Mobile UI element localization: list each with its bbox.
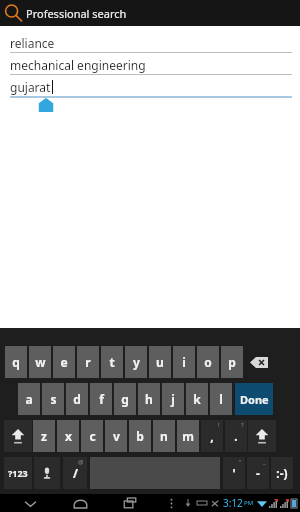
- staticText: i: [182, 354, 186, 370]
- staticText: h: [145, 391, 153, 407]
- staticText: gujarat: [10, 79, 51, 95]
- staticText: o: [204, 354, 212, 370]
- button[interactable]: v: [105, 420, 127, 452]
- staticText: g: [121, 391, 129, 407]
- staticText: z: [41, 428, 47, 444]
- button[interactable]: o: [197, 346, 219, 378]
- staticText: @: [78, 458, 84, 466]
- staticText: Professional search: [26, 6, 127, 21]
- button[interactable]: g: [114, 383, 136, 415]
- button[interactable]: j: [162, 383, 184, 415]
- button[interactable]: Home: [62, 494, 98, 512]
- staticText: y: [133, 354, 140, 370]
- staticText: n: [160, 428, 168, 444]
- staticText: k: [193, 391, 201, 407]
- button[interactable]: ": [223, 457, 245, 489]
- staticText: mechanical engineering: [10, 57, 146, 73]
- staticText: s: [50, 391, 57, 407]
- button[interactable]: !: [201, 420, 223, 452]
- button[interactable]: gujarat: [10, 77, 292, 112]
- button[interactable]: h: [138, 383, 160, 415]
- button[interactable]: e: [53, 346, 75, 378]
- staticText: u: [156, 354, 164, 370]
- staticText: 3:12: [223, 496, 243, 510]
- button[interactable]: k: [186, 383, 208, 415]
- button[interactable]: r: [77, 346, 99, 378]
- button[interactable]: @: [63, 457, 87, 489]
- staticText: j: [171, 391, 175, 407]
- button[interactable]: p: [221, 346, 243, 378]
- button[interactable]: l: [210, 383, 232, 415]
- staticText: x: [65, 428, 72, 444]
- button[interactable]: w: [29, 346, 51, 378]
- button[interactable]: Shift: [4, 420, 32, 452]
- staticText: b: [136, 428, 144, 444]
- button[interactable]: a: [18, 383, 40, 415]
- button[interactable]: b: [129, 420, 151, 452]
- button[interactable]: reliance: [10, 33, 292, 53]
- button[interactable]: Search: [0, 0, 26, 26]
- staticText: t: [109, 354, 115, 370]
- staticText: ': [232, 465, 236, 481]
- staticText: ": [239, 458, 242, 466]
- staticText: .: [234, 428, 238, 444]
- staticText: :-): [276, 465, 288, 481]
- staticText: /: [73, 465, 78, 481]
- staticText: r: [85, 354, 91, 370]
- button[interactable]: i: [173, 346, 195, 378]
- button[interactable]: Backspace: [246, 346, 272, 378]
- staticText: a: [25, 391, 33, 407]
- staticText: q: [12, 354, 20, 370]
- button[interactable]: Recent apps: [112, 494, 148, 512]
- button[interactable]: z: [33, 420, 55, 452]
- staticText: m: [182, 428, 194, 444]
- staticText: reliance: [10, 35, 55, 51]
- staticText: l: [219, 391, 223, 407]
- staticText: v: [113, 428, 120, 444]
- button[interactable]: More options: [158, 494, 184, 512]
- staticText: f: [99, 391, 104, 407]
- staticText: c: [89, 428, 96, 444]
- button[interactable]: d: [66, 383, 88, 415]
- button[interactable]: m: [177, 420, 199, 452]
- staticText: ?123: [8, 467, 28, 479]
- button[interactable]: ?123: [4, 457, 32, 489]
- button[interactable]: f: [90, 383, 112, 415]
- button[interactable]: n: [153, 420, 175, 452]
- staticText: d: [73, 391, 81, 407]
- button[interactable]: Done: [235, 383, 273, 415]
- staticText: !: [218, 421, 220, 429]
- button[interactable]: ?: [225, 420, 247, 452]
- button[interactable]: :-): [271, 457, 293, 489]
- button[interactable]: u: [149, 346, 171, 378]
- button[interactable]: Shift: [248, 420, 276, 452]
- button[interactable]: t: [101, 346, 123, 378]
- button[interactable]: mechanical engineering: [10, 55, 292, 75]
- staticText: ,: [210, 428, 214, 444]
- staticText: _: [263, 458, 266, 466]
- button[interactable]: x: [57, 420, 79, 452]
- button[interactable]: _: [247, 457, 269, 489]
- staticText: -: [256, 465, 260, 481]
- staticText: PM: [244, 499, 254, 507]
- button[interactable]: Voice input: [34, 457, 60, 489]
- staticText: p: [228, 354, 236, 370]
- button[interactable]: c: [81, 420, 103, 452]
- button[interactable]: Back: [12, 494, 48, 512]
- staticText: ?: [241, 421, 244, 429]
- button[interactable]: s: [42, 383, 64, 415]
- staticText: Done: [240, 392, 269, 407]
- button[interactable]: y: [125, 346, 147, 378]
- staticText: w: [35, 354, 46, 370]
- staticText: e: [60, 354, 68, 370]
- button[interactable]: q: [5, 346, 27, 378]
